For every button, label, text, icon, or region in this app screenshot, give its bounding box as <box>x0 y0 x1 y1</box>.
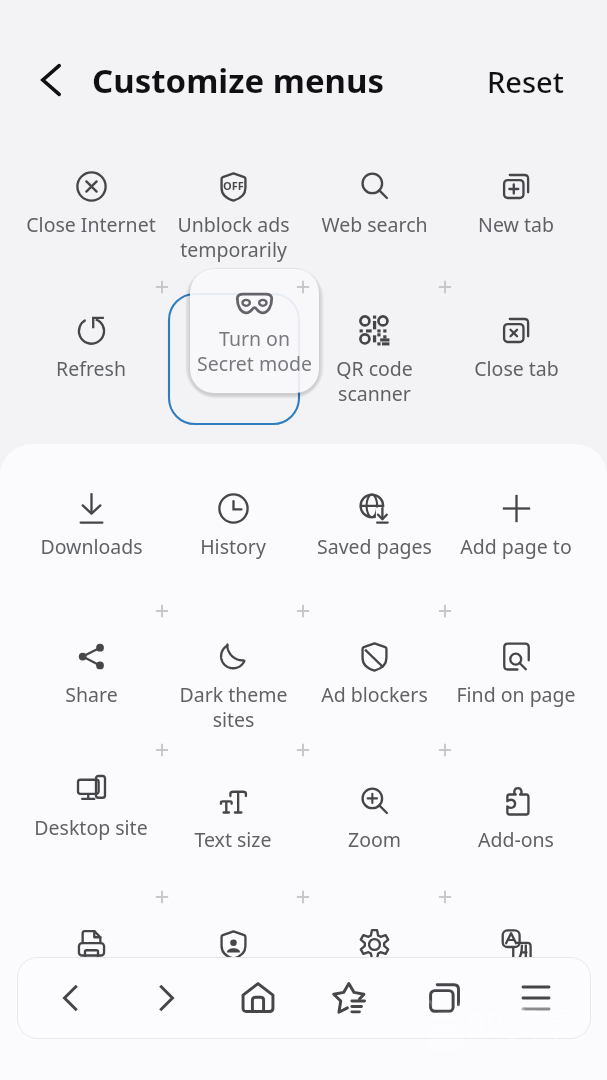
staticText: Zoom <box>348 826 401 853</box>
button[interactable]: Find on page <box>446 681 586 708</box>
staticText: Ad blockers <box>321 681 428 708</box>
button[interactable]: Back <box>42 969 100 1027</box>
button[interactable]: Bookmarks <box>322 969 380 1027</box>
staticText: Downloads <box>40 533 143 560</box>
staticText: New tab <box>478 211 554 238</box>
button[interactable]: Forward <box>137 969 195 1027</box>
button[interactable]: Dark theme sites <box>163 681 303 732</box>
button[interactable]: Downloads <box>21 533 161 560</box>
button[interactable]: Web search <box>304 211 444 238</box>
staticText: Share <box>65 681 118 708</box>
staticText: 99安卓 <box>466 1000 573 1046</box>
staticText: Dark theme sites <box>179 681 288 732</box>
staticText: Close tab <box>474 355 559 382</box>
button[interactable]: Text size <box>163 826 303 853</box>
staticText: Web search <box>321 211 428 238</box>
button[interactable]: Translate <box>446 969 586 996</box>
button[interactable]: Unblock ads temporarily <box>163 211 303 262</box>
staticText: Unblock ads temporarily <box>177 211 290 262</box>
staticText: Translate <box>474 969 558 996</box>
staticText: Privacy <box>200 969 266 996</box>
button[interactable]: Share <box>21 681 161 708</box>
button[interactable]: Home <box>229 969 287 1027</box>
button[interactable]: Add page to <box>446 533 586 560</box>
button[interactable]: Close tab <box>446 355 586 382</box>
staticText: Saved pages <box>317 533 432 560</box>
button[interactable]: New tab <box>446 211 586 238</box>
staticText: QR code scanner <box>336 355 413 406</box>
button[interactable]: Reset <box>471 52 580 111</box>
staticText: Find on page <box>456 681 576 708</box>
staticText: Text size <box>194 826 272 853</box>
staticText: Turn on Secret mode <box>197 325 312 376</box>
staticText: Reset <box>487 62 564 101</box>
button[interactable]: Settings <box>304 969 444 996</box>
button[interactable]: Desktop site <box>21 814 161 841</box>
staticText: Add-ons <box>478 826 554 853</box>
staticText: Print <box>69 969 113 996</box>
staticText: Customize menus <box>92 58 385 103</box>
button[interactable] <box>190 269 319 393</box>
button[interactable]: Privacy <box>163 969 303 996</box>
button[interactable]: Add-ons <box>446 826 586 853</box>
button[interactable]: Print <box>21 969 161 996</box>
staticText: Desktop site <box>34 814 148 841</box>
button[interactable]: Zoom <box>304 826 444 853</box>
button[interactable]: Tabs <box>416 969 474 1027</box>
staticText: Settings <box>337 969 412 996</box>
staticText: Add page to <box>460 533 572 560</box>
button[interactable]: QR code scanner <box>304 355 444 406</box>
staticText: History <box>200 533 266 560</box>
staticText: OFF <box>223 178 244 193</box>
button[interactable]: Close Internet <box>21 211 161 238</box>
button[interactable]: Refresh <box>21 355 161 382</box>
staticText: Refresh <box>56 355 126 382</box>
button[interactable]: Ad blockers <box>304 681 444 708</box>
staticText: Close Internet <box>26 211 156 238</box>
button[interactable]: Back <box>26 54 78 106</box>
button[interactable]: Saved pages <box>304 533 444 560</box>
button[interactable]: Menu <box>507 969 565 1027</box>
button[interactable]: History <box>163 533 303 560</box>
